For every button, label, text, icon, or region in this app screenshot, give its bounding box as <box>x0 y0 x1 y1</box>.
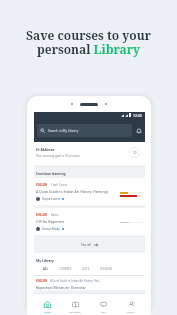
staticText: My Library <box>69 310 81 313</box>
staticText: Continue learning <box>36 171 66 175</box>
button[interactable]: Profile <box>117 294 145 315</box>
staticText: A Quick Guide to Indian Art History: Pai… <box>50 279 102 283</box>
staticText: LESSONS <box>100 267 113 271</box>
staticText: Play <box>101 310 106 313</box>
button[interactable]: Search in My Library <box>37 124 132 137</box>
button[interactable]: See all <box>78 242 101 248</box>
staticText: CSS for Beginners <box>36 219 65 224</box>
staticText: My Library <box>36 258 54 263</box>
button[interactable]: ENGLISH <box>34 208 145 235</box>
button[interactable]: COURSES <box>56 266 75 272</box>
staticText: Koyna kumar <box>42 197 60 201</box>
staticText: COURSES <box>59 267 72 271</box>
staticText: Home <box>44 310 51 313</box>
staticText: Save courses to your personal Library <box>26 27 151 58</box>
staticText: 12:30 <box>133 113 142 118</box>
staticText: ENGLISH <box>36 183 48 187</box>
staticText: Your learning goal is 10 minutes <box>36 154 80 158</box>
staticText: ALL <box>43 267 49 271</box>
button[interactable]: My Library <box>61 294 89 315</box>
button[interactable]: Hi Abhinav <box>34 142 145 165</box>
staticText: Sourav Mody <box>42 227 60 231</box>
staticText: Search in My Library <box>48 129 79 133</box>
staticText: A Quick Guide to Indian Art History: Pai… <box>36 189 109 194</box>
button[interactable]: Home <box>34 294 61 315</box>
staticText: 10 <box>133 151 137 155</box>
staticText: Hi Abhinav <box>36 147 55 152</box>
staticText: Crash Course <box>51 183 68 187</box>
staticText: Basics <box>51 213 59 217</box>
button[interactable]: LISTS <box>79 266 93 272</box>
button[interactable]: LESSONS <box>97 266 116 272</box>
staticText: Rajasthani Miniature: Overview <box>36 285 86 290</box>
button[interactable]: Play <box>89 294 117 315</box>
staticText: ENGLISH <box>36 279 48 283</box>
staticText: ENGLISH <box>36 213 48 217</box>
staticText: Profile <box>127 310 135 313</box>
staticText: LISTS <box>82 267 90 271</box>
staticText: See all <box>81 243 91 247</box>
button[interactable]: ALL <box>40 266 52 272</box>
button[interactable]: ENGLISH <box>34 178 145 205</box>
button[interactable]: Notifications <box>133 125 144 136</box>
